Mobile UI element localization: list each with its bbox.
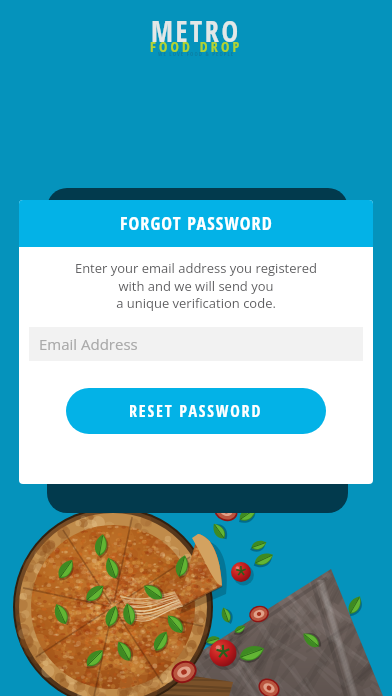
button[interactable]: RESET PASSWORD: [66, 388, 326, 434]
staticText: Enter your email address you registered …: [19, 259, 373, 312]
staticText: METRO: [151, 12, 241, 50]
staticText: WE LOVE FOOD & PEOPLE: [158, 50, 235, 57]
button[interactable]: Email Address: [29, 327, 363, 361]
staticText: RESET PASSWORD: [129, 400, 263, 422]
staticText: Email Address: [39, 334, 138, 354]
staticText: FORGOT PASSWORD: [120, 211, 273, 236]
staticText: FOOD DROP: [150, 37, 243, 56]
